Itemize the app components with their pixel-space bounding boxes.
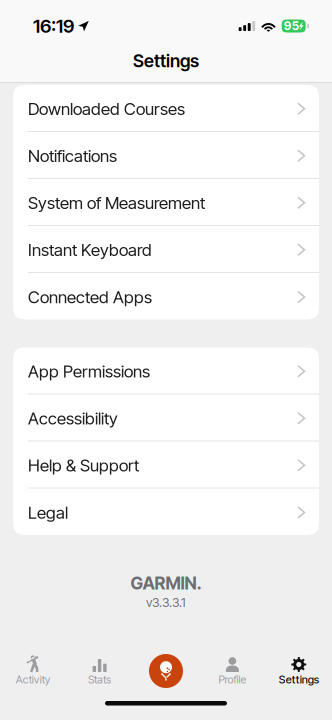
- staticText: Accessibility: [28, 408, 118, 428]
- staticText: Downloaded Courses: [28, 98, 185, 119]
- button[interactable]: Activity: [0, 654, 66, 702]
- button[interactable]: Downloaded Courses: [13, 85, 319, 132]
- staticText: Instant Keyboard: [28, 239, 152, 260]
- button[interactable]: Connected Apps: [13, 273, 319, 319]
- button[interactable]: Accessibility: [13, 394, 319, 441]
- staticText: 95: [284, 19, 299, 33]
- button[interactable]: Help & Support: [13, 441, 319, 488]
- button[interactable]: Legal: [13, 488, 319, 535]
- button[interactable]: Settings: [266, 654, 332, 702]
- button[interactable]: Notifications: [13, 132, 319, 179]
- staticText: Help & Support: [28, 455, 139, 475]
- staticText: Legal: [28, 502, 68, 523]
- button[interactable]: App Permissions: [13, 347, 319, 394]
- button[interactable]: Instant Keyboard: [13, 226, 319, 273]
- staticText: Activity: [16, 673, 51, 686]
- staticText: Notifications: [28, 145, 117, 166]
- staticText: System of Measurement: [28, 192, 205, 213]
- staticText: Connected Apps: [28, 287, 152, 307]
- staticText: Stats: [88, 673, 111, 686]
- button[interactable]: Stats: [66, 654, 133, 702]
- staticText: 16:19: [33, 15, 74, 37]
- staticText: Settings: [133, 50, 199, 71]
- button[interactable]: System of Measurement: [13, 179, 319, 226]
- staticText: Profile: [218, 673, 246, 686]
- staticText: Settings: [279, 673, 319, 686]
- staticText: App Permissions: [28, 361, 150, 381]
- staticText: GARMIN.: [130, 573, 201, 594]
- button[interactable]: Profile: [199, 654, 266, 702]
- button[interactable]: Start a round: [133, 654, 199, 702]
- staticText: v3.3.3.1: [146, 595, 186, 610]
